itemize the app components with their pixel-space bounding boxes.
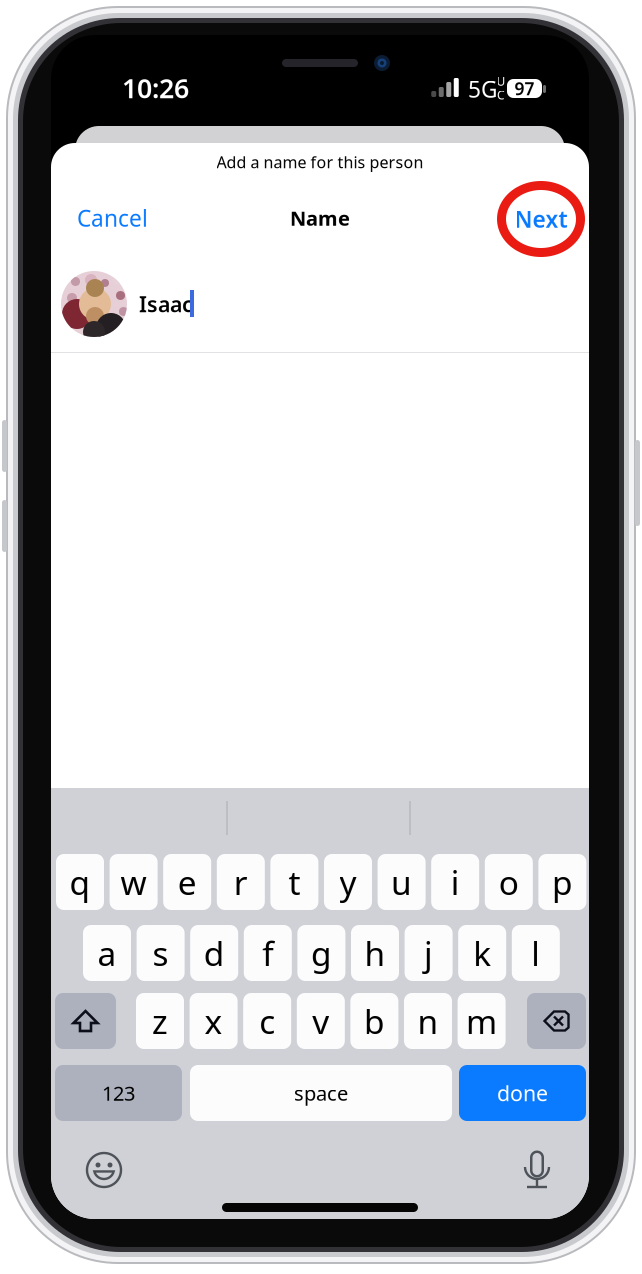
staticText: i bbox=[451, 860, 460, 904]
button[interactable]: Name sheet bbox=[190, 925, 238, 981]
staticText: c bbox=[259, 999, 275, 1043]
staticText: h bbox=[364, 931, 385, 975]
staticText: q bbox=[69, 860, 90, 904]
button[interactable]: Name sheet bbox=[163, 854, 211, 910]
button[interactable]: Name sheet bbox=[55, 1065, 182, 1121]
button[interactable]: Name sheet bbox=[404, 993, 452, 1049]
button[interactable]: Name sheet bbox=[378, 854, 426, 910]
staticText: v bbox=[312, 999, 329, 1043]
staticText: b bbox=[364, 999, 385, 1043]
staticText: 97 bbox=[514, 77, 534, 100]
button[interactable]: Name sheet bbox=[190, 993, 238, 1049]
button[interactable]: Name sheet bbox=[512, 925, 560, 981]
button[interactable]: Name sheet bbox=[431, 854, 479, 910]
staticText: s bbox=[153, 931, 169, 975]
button[interactable]: Name sheet bbox=[244, 925, 292, 981]
button[interactable]: Name sheet bbox=[77, 196, 177, 240]
button[interactable]: Name sheet bbox=[538, 854, 586, 910]
staticText: Cancel bbox=[77, 203, 148, 233]
staticText: p bbox=[552, 860, 573, 904]
button[interactable]: Name sheet bbox=[83, 925, 131, 981]
button[interactable]: Name sheet bbox=[136, 993, 184, 1049]
button[interactable]: Name sheet bbox=[405, 925, 453, 981]
button[interactable]: Name sheet bbox=[297, 925, 345, 981]
button[interactable]: Name sheet bbox=[350, 993, 398, 1049]
button[interactable]: Dictation bbox=[519, 1150, 555, 1190]
staticText: 10:26 bbox=[122, 70, 189, 106]
staticText: U bbox=[496, 73, 505, 89]
button[interactable]: Name sheet bbox=[297, 993, 345, 1049]
button[interactable]: Delete bbox=[527, 993, 586, 1049]
button[interactable]: Name sheet bbox=[56, 854, 104, 910]
staticText: u bbox=[391, 860, 412, 904]
staticText: f bbox=[262, 931, 273, 975]
staticText: w bbox=[121, 860, 147, 904]
staticText: C bbox=[497, 87, 505, 103]
staticText: k bbox=[473, 931, 491, 975]
button[interactable]: Name sheet bbox=[351, 925, 399, 981]
staticText: d bbox=[204, 931, 225, 975]
button[interactable]: Shift bbox=[55, 993, 116, 1049]
staticText: Name bbox=[290, 205, 350, 231]
button[interactable]: Name sheet bbox=[491, 175, 591, 263]
staticText: l bbox=[531, 931, 540, 975]
button[interactable]: Name sheet bbox=[324, 854, 372, 910]
staticText: o bbox=[499, 860, 519, 904]
staticText: 5G bbox=[468, 74, 498, 104]
button[interactable]: Name sheet bbox=[243, 993, 291, 1049]
staticText: m bbox=[466, 999, 497, 1043]
staticText: n bbox=[417, 999, 438, 1043]
button[interactable]: Name sheet bbox=[190, 1065, 452, 1121]
staticText: t bbox=[288, 860, 300, 904]
button[interactable]: Name sheet bbox=[485, 854, 533, 910]
button[interactable]: Name sheet bbox=[270, 854, 318, 910]
staticText: done bbox=[497, 1079, 548, 1107]
staticText: j bbox=[424, 931, 433, 975]
staticText: y bbox=[339, 860, 356, 904]
staticText: Add a name for this person bbox=[216, 151, 423, 173]
button[interactable]: Name sheet bbox=[110, 854, 158, 910]
staticText: 123 bbox=[102, 1080, 135, 1106]
staticText: z bbox=[152, 999, 168, 1043]
button[interactable]: Emoji keyboard bbox=[84, 1150, 124, 1190]
staticText: Next bbox=[514, 204, 567, 234]
staticText: x bbox=[205, 999, 223, 1043]
staticText: a bbox=[97, 931, 116, 975]
staticText: space bbox=[294, 1080, 348, 1106]
staticText: Isaac bbox=[139, 290, 193, 318]
button[interactable]: Name sheet bbox=[458, 993, 506, 1049]
staticText: e bbox=[178, 860, 197, 904]
staticText: g bbox=[311, 931, 332, 975]
button[interactable]: Name sheet bbox=[458, 925, 506, 981]
staticText: r bbox=[234, 860, 248, 904]
button[interactable]: Name sheet bbox=[217, 854, 265, 910]
button[interactable]: Name sheet bbox=[459, 1065, 586, 1121]
button[interactable]: Name sheet bbox=[137, 925, 185, 981]
